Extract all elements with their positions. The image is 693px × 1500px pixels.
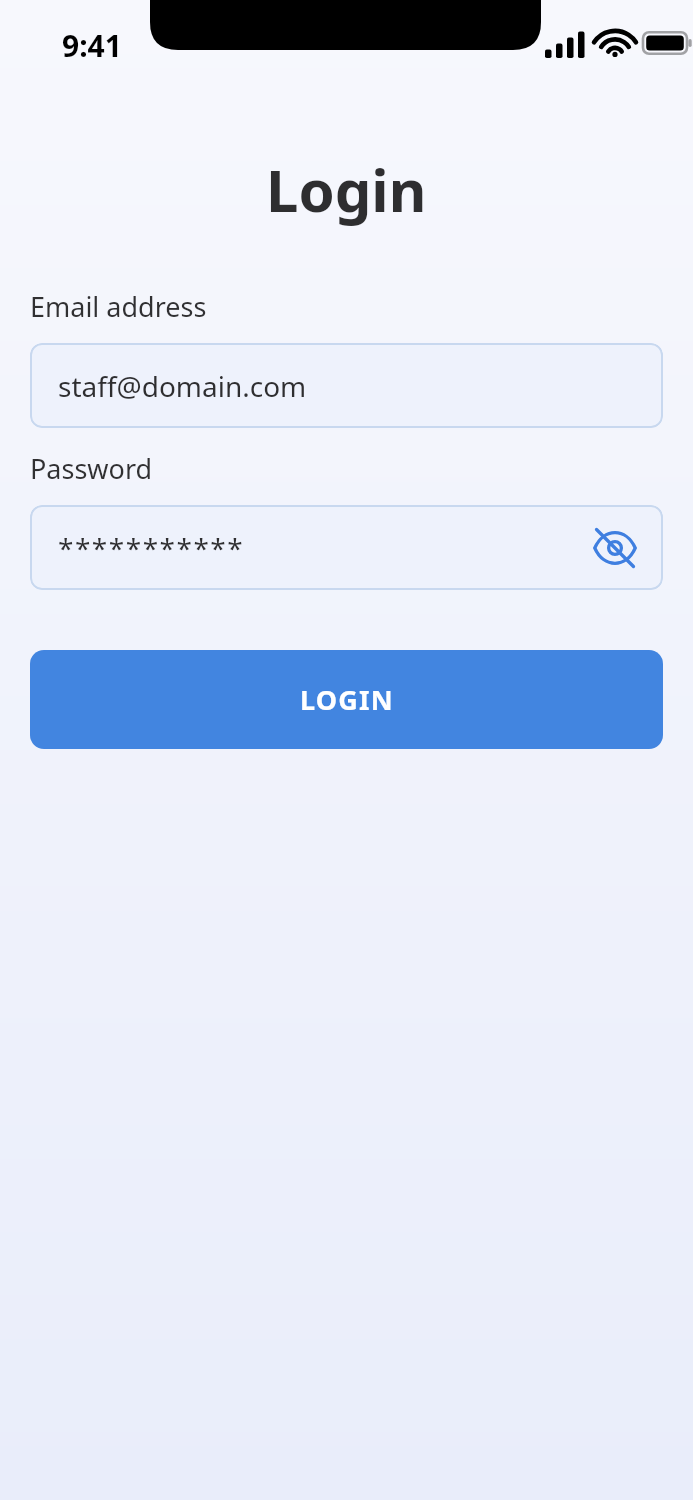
staticText: *********** xyxy=(58,529,245,567)
staticText: staff@domain.com xyxy=(58,367,307,405)
button[interactable]: LOGIN xyxy=(30,650,663,749)
button[interactable]: *********** xyxy=(30,505,663,590)
staticText: 9:41 xyxy=(62,25,122,66)
button[interactable]: Show password xyxy=(589,522,641,574)
staticText: Login xyxy=(266,150,427,229)
staticText: LOGIN xyxy=(300,681,394,718)
staticText: Email address xyxy=(30,288,207,325)
staticText: Password xyxy=(30,450,153,487)
button[interactable]: staff@domain.com xyxy=(30,343,663,428)
